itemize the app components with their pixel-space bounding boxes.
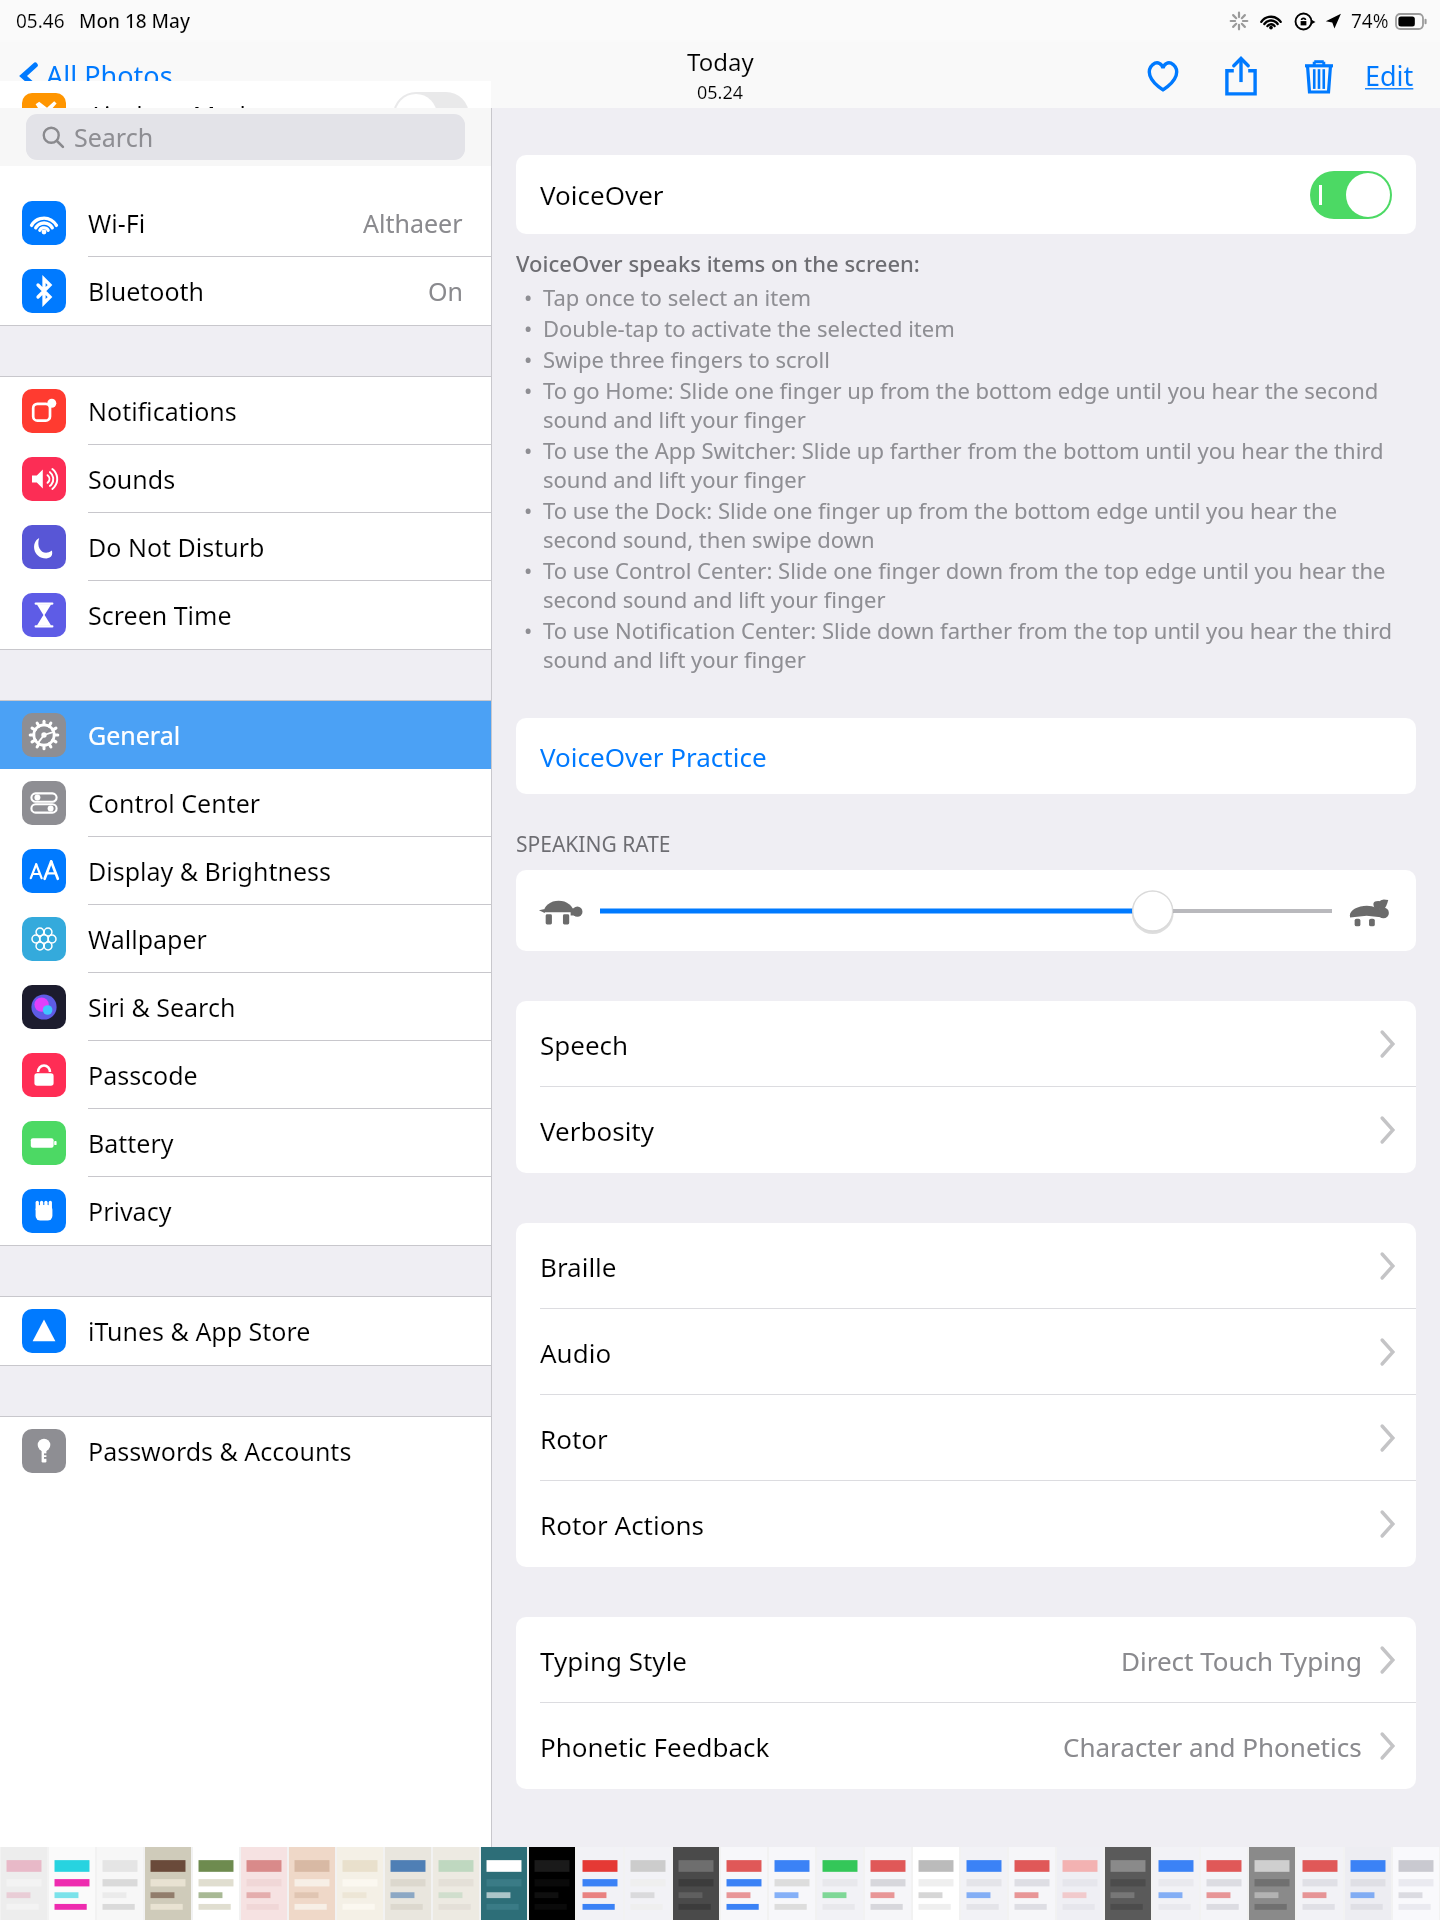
button[interactable]: Phonetic Feedback	[516, 1703, 1416, 1789]
staticText: Althaeer	[363, 206, 463, 240]
staticText: SPEAKING RATE	[516, 830, 671, 859]
button[interactable]: Favorite	[1137, 50, 1189, 102]
staticText: To use Notification Center: Slide down f…	[543, 615, 1416, 674]
button[interactable]	[721, 1847, 767, 1920]
button[interactable]: Rotor Actions	[516, 1481, 1416, 1567]
button[interactable]	[481, 1847, 527, 1920]
button[interactable]	[1057, 1847, 1103, 1920]
button[interactable]	[961, 1847, 1007, 1920]
button[interactable]: Braille	[516, 1223, 1416, 1309]
button[interactable]: Search	[26, 114, 465, 160]
button[interactable]: General	[0, 701, 491, 769]
button[interactable]: Passcode	[0, 1041, 491, 1109]
staticText: To use Control Center: Slide one finger …	[543, 555, 1416, 614]
staticText: Passcode	[88, 1058, 198, 1092]
button[interactable]	[433, 1847, 479, 1920]
button[interactable]	[865, 1847, 911, 1920]
button[interactable]	[145, 1847, 191, 1920]
button[interactable]: Siri & Search	[0, 973, 491, 1041]
staticText: Siri & Search	[88, 990, 236, 1024]
button[interactable]: VoiceOver toggle	[1310, 171, 1392, 219]
button[interactable]: Airplane Mode	[0, 81, 491, 149]
button[interactable]	[817, 1847, 863, 1920]
button[interactable]: Speaking rate slider	[600, 887, 1332, 935]
button[interactable]: iTunes & App Store	[0, 1297, 491, 1365]
button[interactable]: Passwords & Accounts	[0, 1417, 491, 1485]
staticText: 05.46	[16, 8, 65, 34]
button[interactable]: Typing Style	[516, 1617, 1416, 1703]
button[interactable]	[1, 1847, 47, 1920]
button[interactable]	[913, 1847, 959, 1920]
staticText: Privacy	[88, 1194, 172, 1228]
staticText: Airplane Mode	[88, 98, 260, 132]
button[interactable]	[97, 1847, 143, 1920]
staticText: 05.24	[697, 80, 744, 105]
button[interactable]	[1105, 1847, 1151, 1920]
staticText: Passwords & Accounts	[88, 1434, 352, 1468]
button[interactable]: Wallpaper	[0, 905, 491, 973]
button[interactable]: Privacy	[0, 1177, 491, 1245]
button[interactable]	[1249, 1847, 1295, 1920]
button[interactable]: VoiceOver Practice	[516, 718, 1416, 794]
staticText: Phonetic Feedback	[540, 1729, 770, 1764]
button[interactable]: Control Center	[0, 769, 491, 837]
button[interactable]	[1297, 1847, 1343, 1920]
button[interactable]: Battery	[0, 1109, 491, 1177]
button[interactable]	[1153, 1847, 1199, 1920]
staticText: Verbosity	[540, 1113, 655, 1148]
button[interactable]	[337, 1847, 383, 1920]
staticText: Sounds	[88, 462, 176, 496]
button[interactable]	[769, 1847, 815, 1920]
button[interactable]: Verbosity	[516, 1087, 1416, 1173]
button[interactable]: Audio	[516, 1309, 1416, 1395]
button[interactable]: Edit	[1359, 49, 1420, 102]
staticText: Rotor	[540, 1421, 608, 1456]
button[interactable]	[1393, 1847, 1439, 1920]
staticText: To use the App Switcher: Slide up farthe…	[543, 435, 1416, 494]
button[interactable]	[673, 1847, 719, 1920]
button[interactable]	[1009, 1847, 1055, 1920]
staticText: Rotor Actions	[540, 1507, 704, 1542]
staticText: Mon 18 May	[79, 8, 190, 34]
staticText: Edit	[1365, 57, 1414, 94]
button[interactable]	[1345, 1847, 1391, 1920]
button[interactable]	[385, 1847, 431, 1920]
button[interactable]: VoiceOver	[516, 155, 1416, 234]
staticText: •	[524, 313, 533, 343]
staticText: VoiceOver speaks items on the screen:	[516, 248, 920, 278]
button[interactable]: Bluetooth	[0, 257, 491, 325]
staticText: Search	[74, 120, 154, 154]
button[interactable]	[577, 1847, 623, 1920]
button[interactable]	[529, 1847, 575, 1920]
staticText: Do Not Disturb	[88, 530, 265, 564]
button[interactable]: Wi-Fi	[0, 189, 491, 257]
staticText: Swipe three fingers to scroll	[543, 344, 830, 374]
staticText: To use the Dock: Slide one finger up fro…	[543, 495, 1416, 554]
staticText: Wallpaper	[88, 922, 207, 956]
staticText: Control Center	[88, 786, 261, 820]
staticText: Today	[687, 45, 754, 78]
staticText: •	[524, 375, 533, 405]
button[interactable]: Share	[1215, 50, 1267, 102]
button[interactable]: Rotor	[516, 1395, 1416, 1481]
button[interactable]: Display & Brightness	[0, 837, 491, 905]
button[interactable]	[1201, 1847, 1247, 1920]
button[interactable]: All Photos	[18, 51, 175, 100]
button[interactable]: Sounds	[0, 445, 491, 513]
button[interactable]	[289, 1847, 335, 1920]
button[interactable]	[241, 1847, 287, 1920]
staticText: iTunes & App Store	[88, 1314, 311, 1348]
button[interactable]: Screen Time	[0, 581, 491, 649]
button[interactable]: Delete	[1293, 50, 1345, 102]
button[interactable]	[193, 1847, 239, 1920]
staticText: Audio	[540, 1335, 612, 1370]
button[interactable]: Airplane Mode toggle	[393, 92, 469, 138]
staticText: •	[524, 615, 533, 645]
button[interactable]: Speech	[516, 1001, 1416, 1087]
staticText: Braille	[540, 1249, 617, 1284]
button[interactable]	[625, 1847, 671, 1920]
button[interactable]: Do Not Disturb	[0, 513, 491, 581]
button[interactable]	[49, 1847, 95, 1920]
button[interactable]: Notifications	[0, 377, 491, 445]
staticText: Display & Brightness	[88, 854, 331, 888]
